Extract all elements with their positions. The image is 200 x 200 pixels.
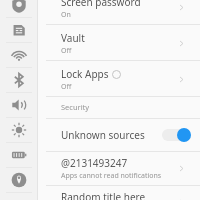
button[interactable]: Random title here [38,186,200,200]
staticText: Lock Apps [61,67,109,81]
button[interactable]: Vault [38,27,200,60]
button[interactable]: Location [0,168,38,192]
button[interactable]: Brightness [0,118,38,142]
staticText: Off [61,82,72,92]
staticText: On [61,10,71,20]
button[interactable]: Wi-Fi [0,43,38,67]
button[interactable]: Bluetooth [0,68,38,92]
staticText: Security [61,102,90,112]
staticText: Random title here [61,190,146,200]
button[interactable]: Unknown sources [38,119,200,150]
staticText: Unknown sources [61,128,145,142]
staticText: @2131493247 [61,156,128,170]
staticText: Screen password [61,0,141,9]
button[interactable]: @2131493247 [38,152,200,185]
button[interactable]: Lock Apps [38,63,200,96]
button[interactable]: Security [0,0,38,17]
staticText: Off [61,46,72,56]
staticText: Vault [61,31,85,45]
button[interactable]: Screen password [38,0,200,24]
button[interactable]: Sound [0,93,38,117]
button[interactable]: SIM card [0,18,38,42]
button[interactable]: Battery [0,143,38,167]
staticText: Apps cannot read notifications [61,171,162,181]
